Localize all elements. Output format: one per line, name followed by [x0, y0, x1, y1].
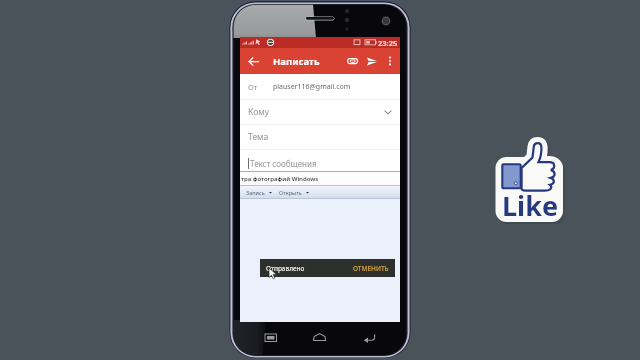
- staticText: ОТМЕНИТЬ: [353, 264, 389, 273]
- button[interactable]: Send: [362, 48, 382, 74]
- button[interactable]: Отправлено: [260, 259, 395, 277]
- staticText: Запись: [246, 189, 265, 196]
- staticText: Like: [502, 187, 559, 224]
- button[interactable]: Home: [306, 330, 334, 344]
- staticText: Отправлено: [266, 264, 305, 273]
- staticText: 23:25: [378, 38, 398, 48]
- staticText: Тема: [248, 131, 269, 143]
- staticText: Текст сообщения: [250, 158, 317, 169]
- staticText: plauser116@gmail.com: [273, 82, 351, 92]
- button[interactable]: Expand recipients: [381, 105, 395, 119]
- staticText: Открыть: [279, 189, 302, 196]
- button[interactable]: Recent apps: [257, 330, 285, 344]
- button[interactable]: Attach: [343, 48, 362, 74]
- staticText: Кому: [248, 106, 270, 118]
- staticText: тра фотографий Windows: [241, 175, 319, 183]
- staticText: От: [248, 82, 258, 92]
- button[interactable]: Back: [356, 330, 384, 344]
- button[interactable]: Back: [240, 48, 264, 74]
- button[interactable]: More options: [382, 48, 398, 74]
- staticText: Написать: [273, 55, 320, 68]
